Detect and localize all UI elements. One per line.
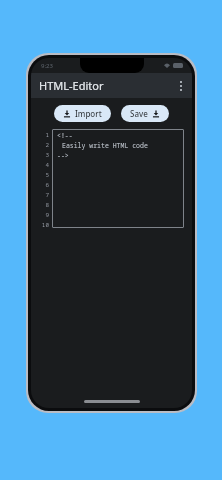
staticText: 8 [45,201,49,211]
staticText: 6 [45,181,49,191]
button[interactable]: <!-- [52,129,184,228]
staticText: <!-- [57,131,73,141]
button[interactable]: Save [121,105,169,122]
staticText: 7 [45,191,49,201]
staticText: --> [57,151,69,161]
staticText: 9:23 [41,62,53,70]
staticText: 4 [45,161,49,171]
staticText: 2 [45,141,49,151]
staticText: Save [130,108,148,119]
staticText: Easily write HTML code [62,141,148,151]
button[interactable]: Import [54,105,111,122]
staticText: 9 [45,211,49,221]
button[interactable]: More options [170,73,192,98]
staticText: 1 [45,131,49,141]
staticText: Import [75,108,102,119]
staticText: HTML-Editor [39,78,104,93]
staticText: 10 [41,221,49,231]
staticText: 5 [45,171,49,181]
staticText: 3 [45,151,49,161]
